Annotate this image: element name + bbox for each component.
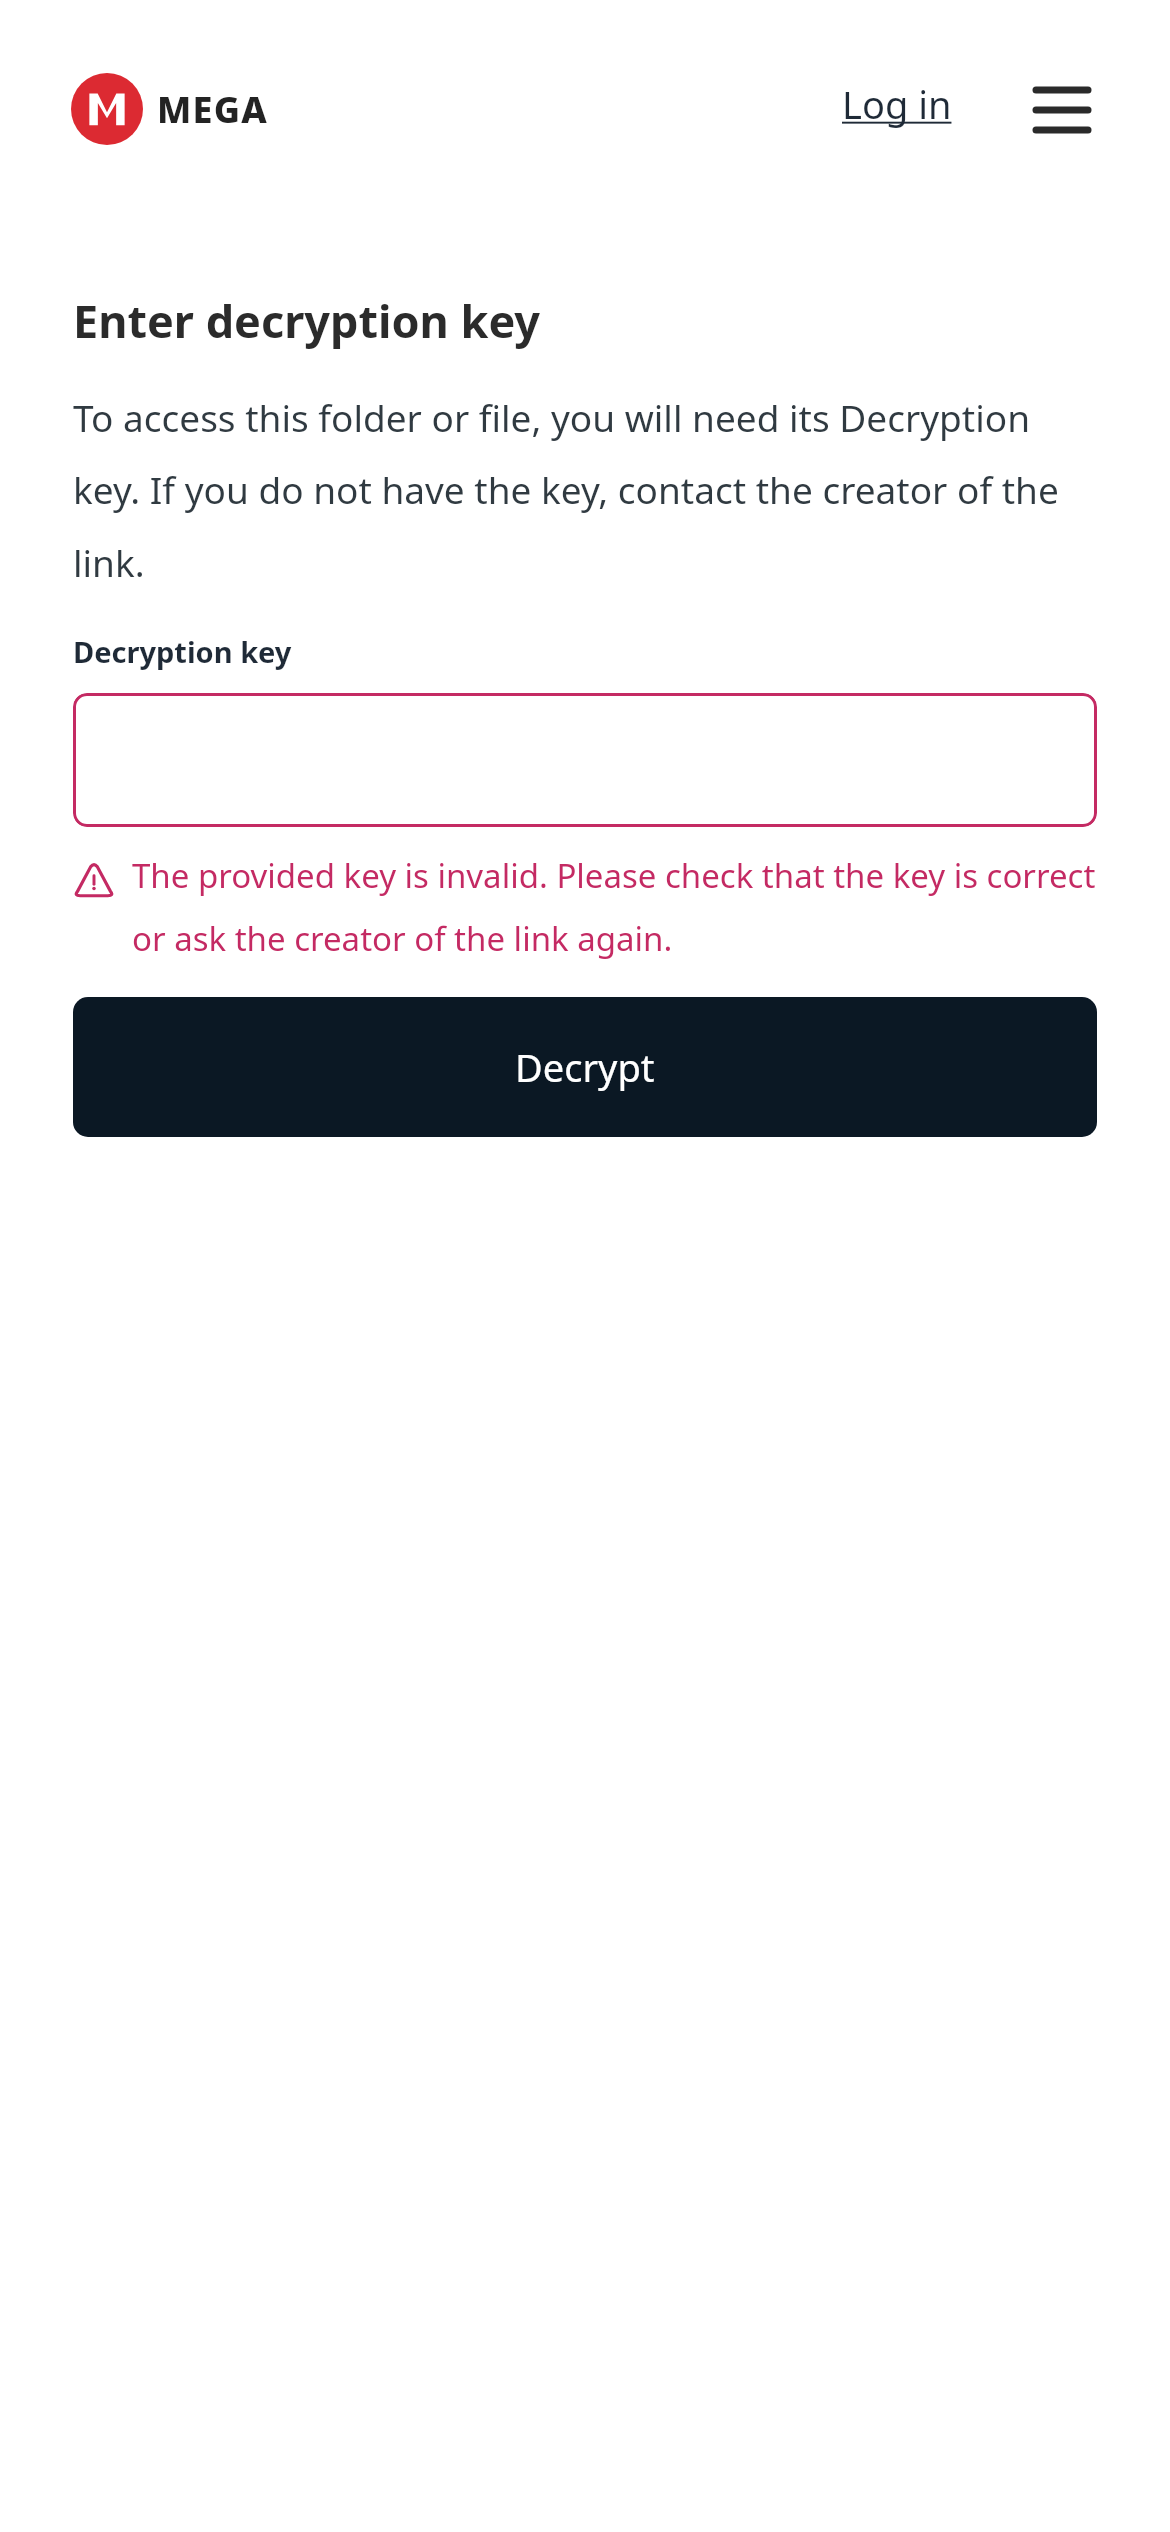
staticText: Decryption key [73, 632, 292, 671]
staticText: The provided key is invalid. Please chec… [132, 853, 1097, 961]
staticText: Log in [842, 78, 952, 130]
button[interactable]: Log in [830, 72, 964, 136]
staticText: Enter decryption key [73, 290, 541, 351]
button[interactable]: Decrypt [73, 997, 1097, 1137]
button[interactable]: MEGA home [71, 73, 268, 145]
staticText: Decrypt [515, 1041, 655, 1093]
staticText: To access this folder or file, you will … [73, 392, 1097, 588]
button[interactable]: Decryption key input [73, 693, 1097, 827]
staticText: MEGA [157, 85, 268, 134]
button[interactable]: Menu [1021, 70, 1103, 150]
